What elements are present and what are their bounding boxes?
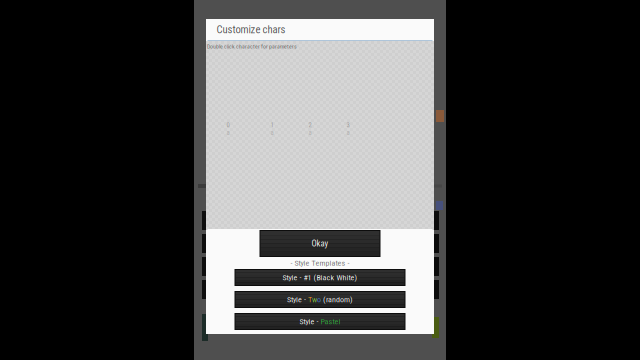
- staticText: w: [312, 295, 317, 304]
- button[interactable]: Style - #1 (Black White): [234, 269, 405, 286]
- button[interactable]: Style -: [234, 291, 405, 308]
- staticText: o: [317, 295, 321, 304]
- staticText: a: [346, 129, 349, 137]
- staticText: Style -: [287, 295, 308, 304]
- staticText: Customize chars: [216, 23, 285, 36]
- button[interactable]: Okay: [259, 230, 380, 257]
- staticText: Style - #1 (Black White): [282, 273, 357, 282]
- staticText: a: [226, 129, 229, 137]
- staticText: 2: [308, 121, 311, 129]
- staticText: (random): [321, 295, 353, 304]
- staticText: Double click character for parameters: [207, 43, 297, 50]
- staticText: 0: [226, 121, 229, 129]
- button[interactable]: Style -: [234, 313, 405, 330]
- staticText: 1: [270, 121, 273, 129]
- staticText: Pastel: [320, 317, 340, 326]
- staticText: a: [270, 129, 273, 137]
- staticText: 3: [346, 121, 349, 129]
- staticText: T: [308, 295, 312, 304]
- staticText: Okay: [311, 238, 328, 249]
- staticText: a: [308, 129, 311, 137]
- staticText: - Style Templates -: [290, 258, 349, 268]
- staticText: Style -: [299, 317, 320, 326]
